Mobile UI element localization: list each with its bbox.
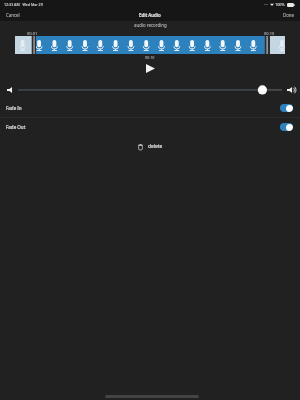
staticText: 00:01 [27, 31, 38, 36]
button[interactable]: delete [129, 140, 171, 152]
button[interactable]: Fade Out [0, 117, 300, 136]
staticText: Done [283, 12, 295, 18]
staticText: 12:33 AM Wed Mar 29 [4, 2, 43, 7]
staticText: 100% [275, 2, 285, 7]
button[interactable]: Fade In [0, 98, 300, 117]
button[interactable]: Trim audio [15, 36, 285, 54]
button[interactable]: Cancel [0, 10, 24, 20]
staticText: delete [148, 143, 163, 150]
staticText: Edit Audio [139, 12, 161, 18]
staticText: 00:10 [145, 55, 155, 60]
staticText: 00:10 [264, 31, 275, 36]
staticText: Fade In [6, 105, 22, 111]
staticText: audio recording [134, 22, 167, 28]
button[interactable]: Volume up [286, 84, 297, 95]
staticText: Fade Out [6, 124, 26, 130]
button[interactable]: Volume down [5, 84, 16, 95]
button[interactable]: Done [279, 10, 300, 20]
button[interactable]: Play [143, 61, 158, 76]
staticText: Cancel [6, 12, 20, 18]
